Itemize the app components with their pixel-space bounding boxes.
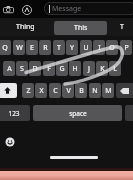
button[interactable]: L [109,61,121,76]
button[interactable]: K [96,61,108,76]
button[interactable]: Emoji [5,137,15,147]
staticText: 123 [8,109,20,118]
staticText: F [47,64,51,74]
button[interactable]: Apps [22,5,32,15]
staticText: space [69,109,87,118]
staticText: Thing [16,22,35,32]
staticText: A [7,64,12,74]
button[interactable]: H [69,61,81,76]
staticText: R [43,43,48,53]
staticText: M [105,86,112,96]
staticText: H [72,64,78,74]
button[interactable]: U [80,40,92,55]
button[interactable]: J [83,61,95,76]
staticText: P [124,43,129,53]
button[interactable] [0,83,17,98]
staticText: O [109,43,115,53]
button[interactable] [125,105,133,121]
button[interactable]: M [102,83,114,98]
button[interactable]: O [106,40,118,55]
staticText: T [120,22,124,32]
staticText: E [30,43,34,53]
button[interactable]: 123 [0,105,30,121]
staticText: D [32,64,38,74]
staticText: C [53,86,58,96]
button[interactable]: B [75,83,87,98]
button[interactable]: F [43,61,55,76]
button[interactable]: E [26,40,38,55]
button[interactable]: C [49,83,61,98]
button[interactable]: R [39,40,51,55]
button[interactable]: Message [44,2,133,15]
staticText: J [88,64,90,74]
button[interactable]: V [62,83,74,98]
staticText: Q [2,43,8,53]
staticText: S [20,64,24,74]
staticText: W [16,43,23,53]
staticText: V [66,86,71,96]
button[interactable]: D [29,61,41,76]
button[interactable]: I [93,40,105,55]
button[interactable]: X [35,83,47,98]
button[interactable] [116,83,133,98]
staticText: This [74,23,88,33]
button[interactable]: P [120,40,132,55]
button[interactable]: G [56,61,68,76]
button[interactable]: W [13,40,25,55]
button[interactable]: Y [66,40,78,55]
button[interactable]: space [33,105,122,121]
button[interactable]: Q [0,40,11,55]
button[interactable]: Z [22,83,34,98]
button[interactable]: Camera [2,3,15,16]
staticText: K [100,64,105,74]
button[interactable]: T [53,40,65,55]
button[interactable]: This [54,21,107,35]
button[interactable]: Thing [2,20,48,34]
button[interactable]: N [89,83,101,98]
button[interactable]: S [16,61,28,76]
staticText: T [57,43,61,53]
button[interactable]: T [110,20,133,34]
staticText: I [98,43,101,53]
button[interactable]: A [3,61,15,76]
staticText: U [83,43,89,53]
staticText: B [79,86,84,96]
staticText: Message [52,4,82,14]
staticText: Z [26,86,31,96]
staticText: G [59,64,65,74]
staticText: L [113,64,117,74]
staticText: N [92,86,98,96]
staticText: Y [70,43,74,53]
staticText: X [39,86,44,96]
